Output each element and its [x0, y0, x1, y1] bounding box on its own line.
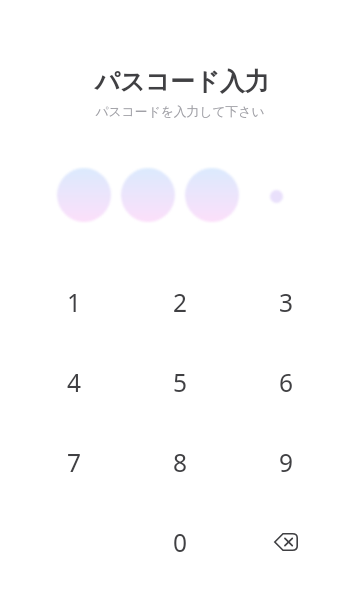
button[interactable]: 削除: [233, 502, 339, 582]
staticText: 9: [279, 446, 294, 479]
button[interactable]: 0: [127, 502, 233, 582]
staticText: パスコード入力: [2, 66, 360, 97]
button[interactable]: 4: [21, 342, 127, 422]
staticText: 6: [279, 366, 294, 399]
button[interactable]: 7: [21, 422, 127, 502]
button[interactable]: 3: [233, 262, 339, 342]
button[interactable]: 8: [127, 422, 233, 502]
staticText: 2: [173, 286, 188, 319]
button[interactable]: 1: [21, 262, 127, 342]
staticText: 7: [67, 446, 82, 479]
staticText: 1: [67, 286, 82, 319]
staticText: 0: [173, 526, 188, 559]
staticText: 5: [173, 366, 188, 399]
staticText: 4: [67, 366, 82, 399]
staticText: 3: [279, 286, 294, 319]
button[interactable]: 9: [233, 422, 339, 502]
staticText: 8: [173, 446, 188, 479]
button[interactable]: 6: [233, 342, 339, 422]
button[interactable]: 5: [127, 342, 233, 422]
staticText: パスコードを入力して下さい: [0, 104, 360, 120]
button[interactable]: 2: [127, 262, 233, 342]
